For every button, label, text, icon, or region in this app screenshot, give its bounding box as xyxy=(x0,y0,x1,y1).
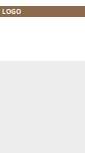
staticText: LOGO xyxy=(2,7,21,16)
